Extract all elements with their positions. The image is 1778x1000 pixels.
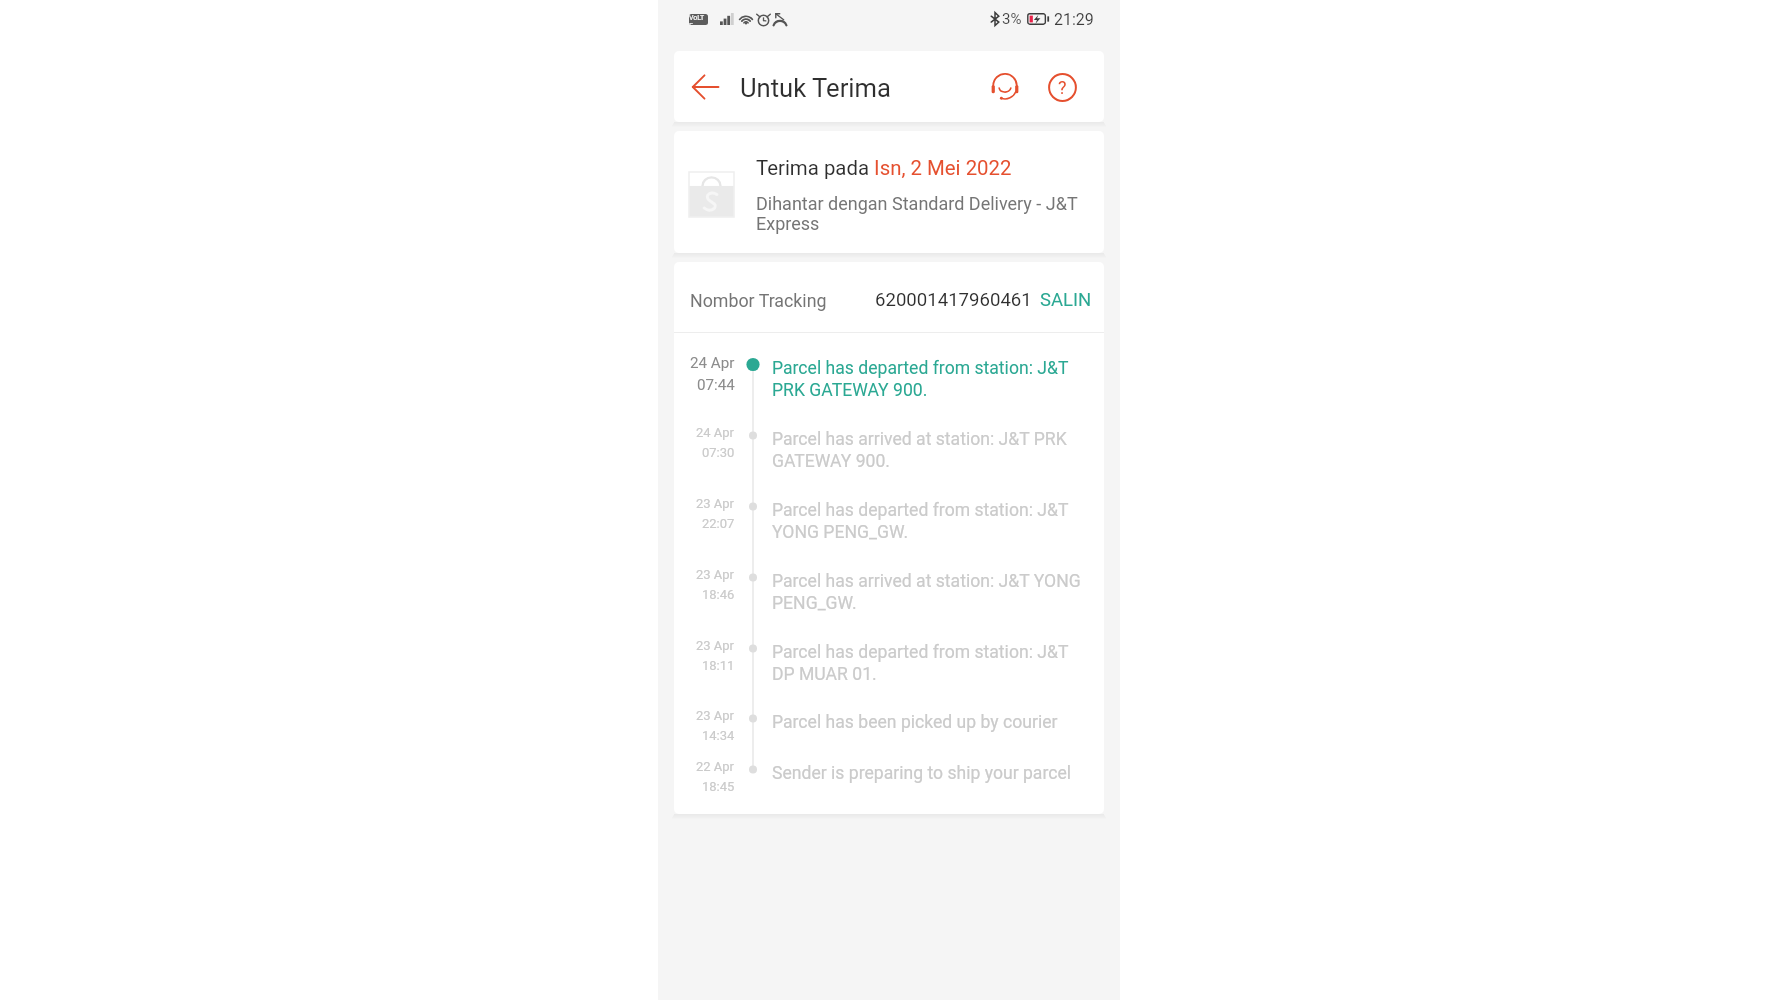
staticText: 23 Apr <box>696 638 735 653</box>
staticText: 3% <box>1002 10 1022 28</box>
button[interactable]: Terima pada Isn, 2 Mei 2022 <box>674 131 1104 253</box>
staticText: 18:11 <box>702 658 735 673</box>
staticText: Dihantar dengan Standard Delivery - J&T … <box>756 193 1092 234</box>
staticText: 22:07 <box>702 516 735 531</box>
staticText: Sender is preparing to ship your parcel <box>772 763 1072 784</box>
staticText: 24 Apr <box>690 354 735 372</box>
staticText: 620001417960461 <box>875 289 1032 311</box>
staticText: 07:44 <box>697 376 735 394</box>
staticText: Nombor Tracking <box>690 290 827 311</box>
staticText: Untuk Terima <box>740 73 891 103</box>
staticText: 24 Apr <box>696 425 735 440</box>
staticText: Parcel has arrived at station: J&T YONG … <box>772 571 1092 613</box>
staticText: 14:34 <box>702 728 735 743</box>
button[interactable]: Customer support <box>984 64 1026 110</box>
staticText: SALIN <box>1040 289 1092 311</box>
staticText: Parcel has arrived at station: J&T PRK G… <box>772 429 1092 471</box>
staticText: 18:46 <box>702 587 735 602</box>
staticText: 07:30 <box>702 445 735 460</box>
staticText: 21:29 <box>1054 10 1094 29</box>
staticText: 23 Apr <box>696 708 735 723</box>
staticText: Parcel has departed from station: J&T YO… <box>772 500 1092 542</box>
staticText: Parcel has departed from station: J&T PR… <box>772 358 1092 400</box>
button[interactable]: Help <box>1043 64 1081 110</box>
staticText: Parcel has been picked up by courier <box>772 712 1058 733</box>
staticText: Parcel has departed from station: J&T DP… <box>772 642 1092 684</box>
staticText: 18:45 <box>702 779 735 794</box>
staticText: ? <box>1058 77 1067 98</box>
staticText: 23 Apr <box>696 567 735 582</box>
staticText: 23 Apr <box>696 496 735 511</box>
button[interactable]: Back <box>686 64 725 110</box>
staticText: VoLTE <box>689 14 708 25</box>
button[interactable]: Nombor Tracking <box>674 262 1104 332</box>
staticText: Terima pada Isn, 2 Mei 2022 <box>756 156 1012 180</box>
staticText: 22 Apr <box>696 759 735 774</box>
